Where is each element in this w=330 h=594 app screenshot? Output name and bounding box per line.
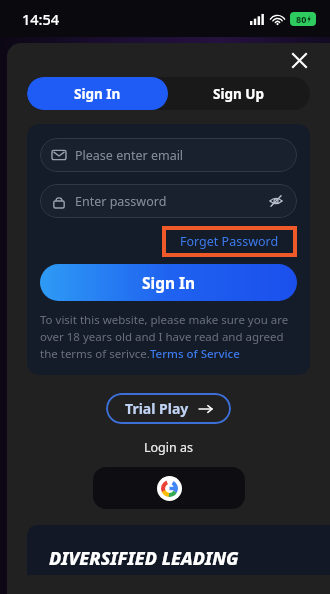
button[interactable]: Please enter email: [40, 138, 297, 172]
button[interactable]: Trial Play: [106, 393, 231, 424]
staticText: Please enter email: [75, 147, 285, 164]
staticText: Sign In: [142, 272, 196, 293]
staticText: Enter password: [75, 193, 267, 210]
button[interactable]: Close: [286, 47, 312, 73]
button[interactable]: Enter password: [40, 184, 297, 218]
staticText: To visit this website, please make sure …: [40, 312, 297, 361]
staticText: DIVERSIFIED LEADING: [49, 546, 239, 571]
staticText: 14:54: [22, 9, 60, 29]
staticText: 80: [296, 13, 307, 25]
button[interactable]: Sign In: [40, 264, 297, 301]
button[interactable]: Sign Up: [168, 77, 310, 110]
button[interactable]: Toggle password visibility: [267, 192, 285, 210]
staticText: Login as: [7, 439, 330, 456]
staticText: Trial Play: [125, 399, 189, 418]
button[interactable]: Sign in with Google: [93, 467, 245, 509]
staticText: Sign In: [74, 85, 121, 103]
staticText: Forget Password: [180, 233, 279, 250]
button[interactable]: Forget Password: [166, 230, 293, 253]
button[interactable]: Sign In: [27, 77, 168, 110]
staticText: Sign Up: [213, 85, 265, 103]
